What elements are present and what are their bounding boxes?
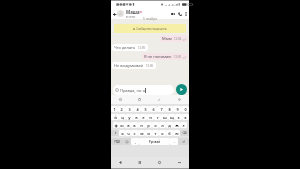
button[interactable]: л: [159, 122, 166, 128]
staticText: р: [147, 123, 150, 128]
button[interactable]: д: [166, 122, 173, 128]
staticText: н: [149, 115, 152, 120]
staticText: х: [184, 115, 187, 120]
staticText: з: [177, 115, 180, 120]
button[interactable]: 7: [157, 106, 165, 112]
button[interactable]: 2: [118, 106, 125, 112]
button[interactable]: 4: [133, 106, 141, 112]
button[interactable]: Home: [149, 157, 169, 168]
staticText: с: [133, 131, 136, 136]
staticText: 12:05: [174, 55, 182, 59]
staticText: ч: [127, 131, 130, 136]
staticText: ь: [161, 131, 164, 136]
staticText: ,: [135, 140, 136, 144]
button[interactable]: э: [180, 122, 187, 128]
button[interactable]: Что делать: [114, 45, 146, 50]
button[interactable]: ь: [159, 130, 166, 136]
staticText: Я не понимаю: [144, 54, 172, 59]
button[interactable]: Recents: [169, 157, 189, 168]
button[interactable]: 8: [165, 106, 173, 112]
button[interactable]: ж: [173, 122, 180, 128]
button[interactable]: Я не понимаю: [144, 54, 186, 59]
button[interactable]: й: [111, 114, 119, 120]
button[interactable]: е: [140, 114, 147, 120]
button[interactable]: Emoji: [111, 95, 130, 104]
button[interactable]: Settings: [169, 95, 189, 104]
button[interactable]: Сообщения защищены: [114, 24, 186, 33]
button[interactable]: а: [131, 122, 138, 128]
button[interactable]: ⌫: [180, 130, 189, 136]
staticText: ⏎: [182, 140, 185, 144]
button[interactable]: ,: [131, 138, 139, 145]
button[interactable]: в: [125, 122, 131, 128]
staticText: ☺: [125, 140, 129, 144]
button[interactable]: б: [166, 130, 173, 136]
button[interactable]: ю: [173, 130, 180, 136]
button[interactable]: More options: [183, 11, 189, 17]
button[interactable]: Правда, но я: [115, 85, 172, 95]
staticText: м: [140, 131, 144, 136]
button[interactable]: 6: [149, 106, 157, 112]
button[interactable]: Back: [111, 11, 117, 17]
button[interactable]: Call: [177, 11, 183, 17]
button[interactable]: к: [133, 114, 140, 120]
button[interactable]: т: [152, 130, 159, 136]
staticText: 6: [152, 107, 155, 112]
button[interactable]: у: [126, 114, 133, 120]
staticText: ш: [163, 115, 167, 120]
button[interactable]: щ: [168, 114, 175, 120]
button[interactable]: Sticker: [149, 95, 169, 104]
button[interactable]: Keyboard: [111, 157, 130, 168]
button[interactable]: ч: [125, 130, 131, 136]
button[interactable]: 1: [111, 106, 118, 112]
button[interactable]: ⏎: [178, 138, 189, 145]
staticText: Ммм: [162, 36, 172, 41]
staticText: я: [121, 131, 124, 136]
staticText: э: [182, 123, 185, 128]
button[interactable]: Русский: [139, 138, 170, 145]
button[interactable]: и: [145, 130, 152, 136]
staticText: Русский: [149, 140, 160, 144]
button[interactable]: 9: [173, 106, 181, 112]
staticText: у: [128, 115, 131, 120]
button[interactable]: 3: [125, 106, 133, 112]
button[interactable]: ш: [161, 114, 168, 120]
button[interactable]: м: [138, 130, 145, 136]
button[interactable]: о: [152, 122, 159, 128]
button[interactable]: Send: [176, 84, 187, 95]
button[interactable]: г: [154, 114, 161, 120]
button[interactable]: ц: [119, 114, 126, 120]
staticText: к: [135, 115, 138, 120]
button[interactable]: н: [147, 114, 154, 120]
button[interactable]: ?123: [111, 138, 123, 145]
button[interactable]: з: [175, 114, 182, 120]
button[interactable]: ⇧: [111, 130, 119, 136]
button[interactable]: 5: [141, 106, 149, 112]
button[interactable]: х: [182, 114, 189, 120]
button[interactable]: ☺: [123, 138, 131, 145]
staticText: б: [168, 131, 171, 136]
staticText: ж: [175, 123, 179, 128]
button[interactable]: Clipboard: [130, 95, 149, 104]
button[interactable]: ф: [113, 122, 119, 128]
button[interactable]: я: [119, 130, 125, 136]
staticText: 4: [136, 107, 139, 112]
staticText: ⌫: [182, 131, 187, 135]
staticText: о: [154, 123, 157, 128]
staticText: 5: [144, 107, 147, 112]
button[interactable]: п: [138, 122, 145, 128]
staticText: 9: [176, 107, 179, 112]
button[interactable]: Ммм: [162, 36, 186, 41]
staticText: в: [127, 123, 130, 128]
button[interactable]: с: [131, 130, 138, 136]
button[interactable]: 0: [181, 106, 189, 112]
button[interactable]: Video call: [170, 11, 176, 17]
button[interactable]: Back: [130, 157, 149, 168]
button[interactable]: р: [145, 122, 152, 128]
staticText: п: [140, 123, 143, 128]
staticText: 7: [160, 107, 163, 112]
button[interactable]: ы: [119, 122, 125, 128]
button[interactable]: .: [170, 138, 178, 145]
staticText: Что делать: [114, 45, 136, 50]
button[interactable]: Не выдумывай: [114, 63, 154, 68]
